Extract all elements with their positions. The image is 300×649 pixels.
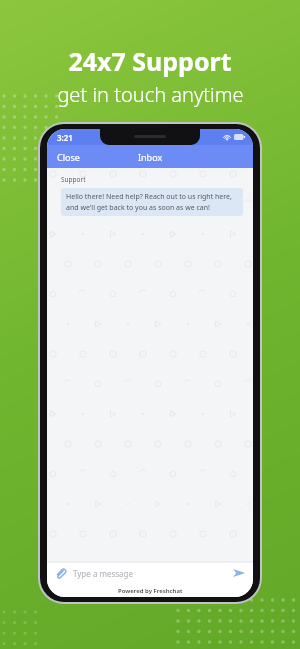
button[interactable]: Attach file — [54, 567, 67, 580]
button[interactable]: Hello there! Need help? Reach out to us … — [61, 188, 243, 216]
staticText: Close — [57, 151, 80, 163]
staticText: Inbox — [138, 151, 163, 163]
staticText: Type a message — [73, 568, 232, 579]
button[interactable]: Send — [232, 566, 246, 580]
staticText: Hello there! Need help? Reach out to us … — [66, 192, 238, 212]
staticText: Powered by Freshchat — [118, 587, 183, 595]
staticText: 3:21 — [57, 132, 73, 143]
staticText: 24x7 Support — [68, 44, 232, 78]
button[interactable]: Close — [47, 148, 90, 166]
staticText: get in touch anytime — [57, 81, 244, 108]
staticText: Support — [61, 175, 86, 184]
